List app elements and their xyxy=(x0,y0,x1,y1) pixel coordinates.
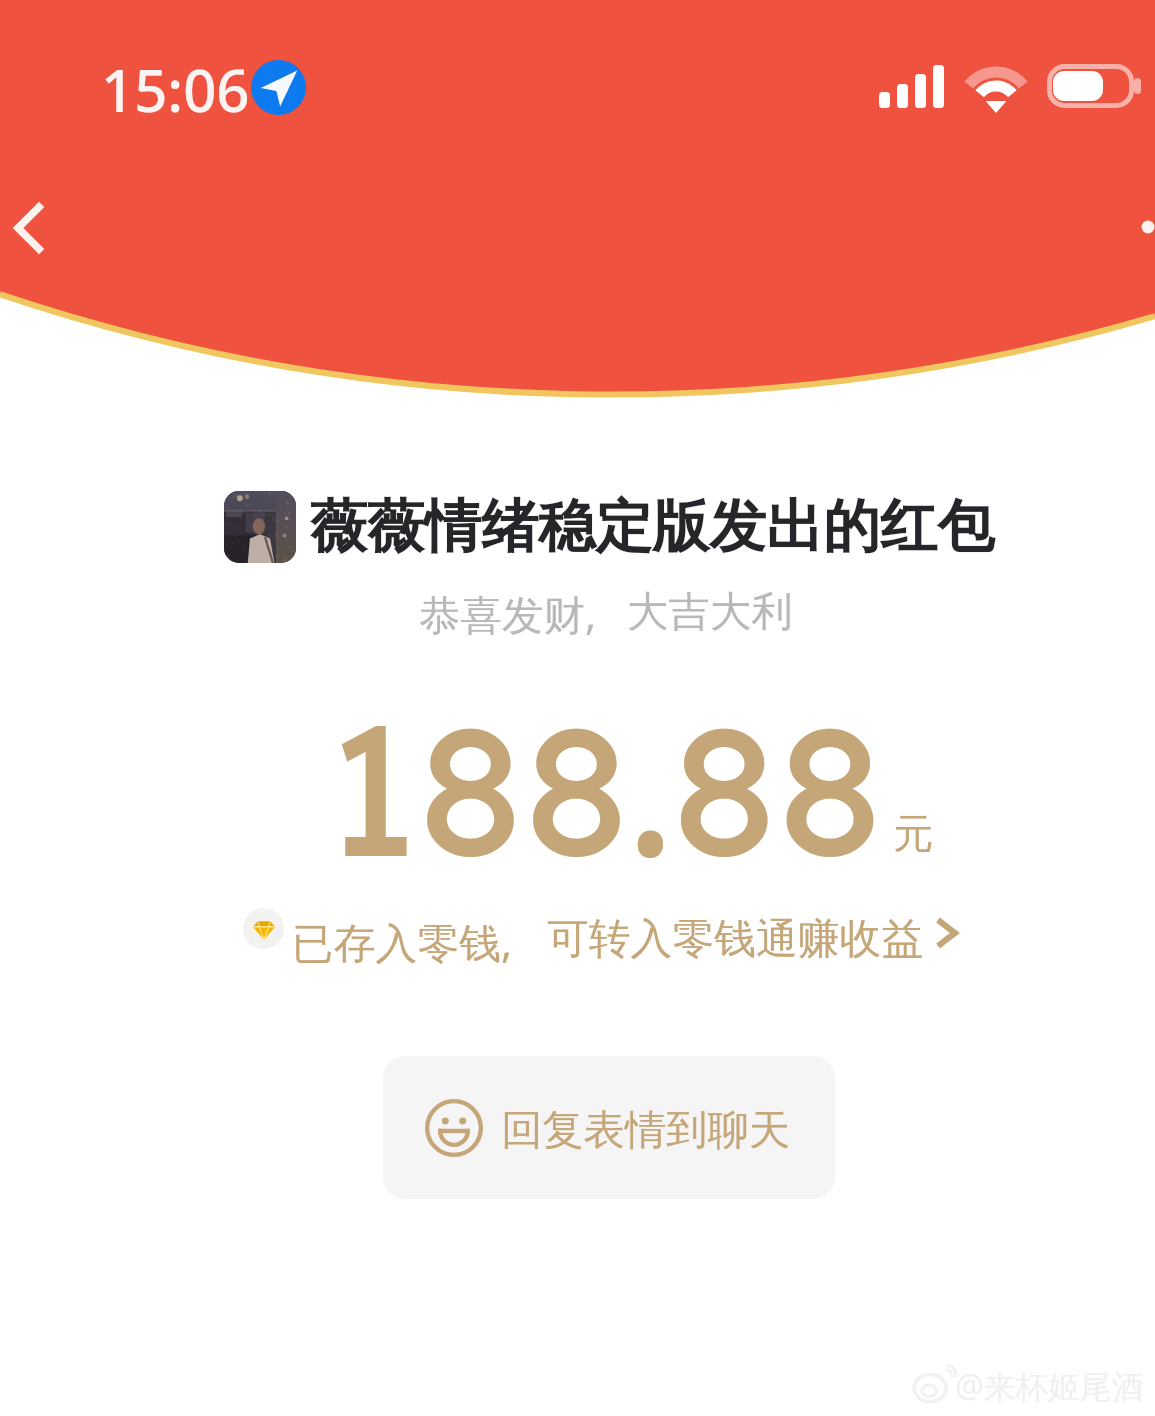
staticText: 188.88 xyxy=(326,673,884,902)
staticText: 回复表情到聊天 xyxy=(501,1104,791,1156)
staticText: 薇薇情绪稳定版发出的红包 xyxy=(310,491,994,563)
button[interactable]: 回复表情到聊天 xyxy=(383,1056,835,1199)
staticText: 15:06 xyxy=(101,50,250,129)
button[interactable]: More options xyxy=(1075,176,1155,276)
button[interactable]: 已存入零钱, xyxy=(237,898,961,960)
staticText: 大吉大利 xyxy=(627,586,793,638)
staticText: 已存入零钱, xyxy=(292,913,513,970)
staticText: @来杯姬尾酒 xyxy=(955,1364,1144,1408)
staticText: 恭喜发财, xyxy=(419,586,597,643)
staticText: 可转入零钱通赚收益 xyxy=(547,913,924,966)
button[interactable]: Back xyxy=(0,170,112,284)
staticText: 元 xyxy=(893,808,933,858)
